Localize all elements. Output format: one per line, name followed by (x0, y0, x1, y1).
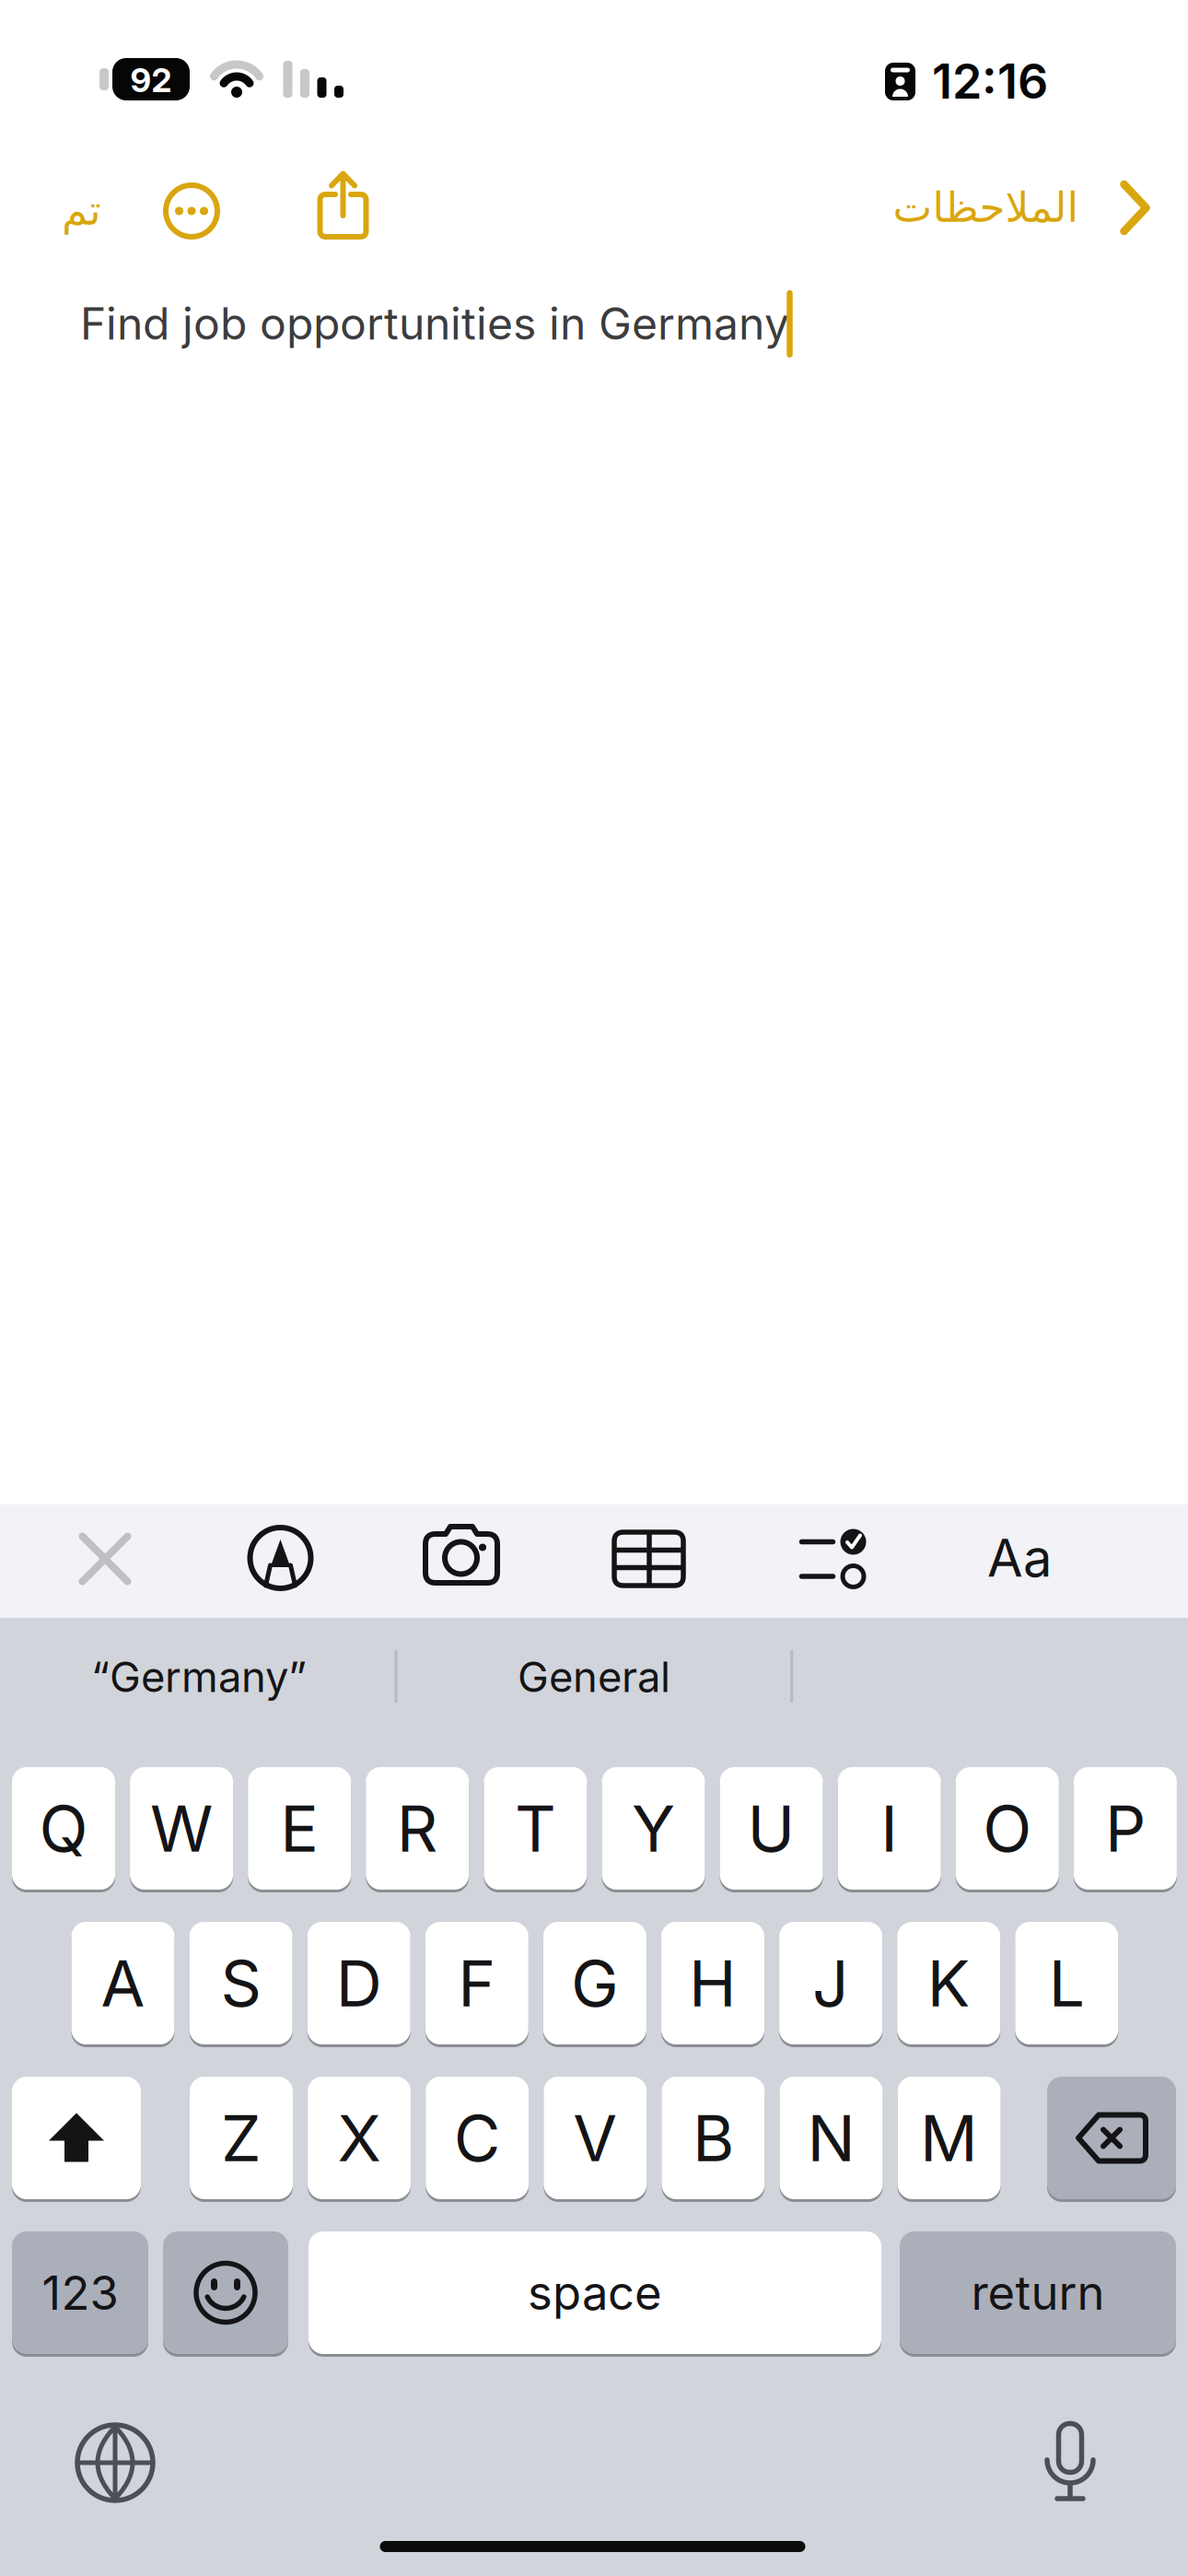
staticText: M (920, 2100, 978, 2176)
button[interactable]: E (0, 0, 1188, 2576)
staticText: E (280, 1791, 319, 1866)
staticText: الملاحظات (892, 184, 1078, 231)
button[interactable]: F (0, 0, 1188, 2576)
staticText: Z (221, 2100, 262, 2176)
staticText: W (150, 1791, 213, 1866)
button[interactable]: N (0, 0, 1188, 2576)
staticText: U (747, 1791, 795, 1866)
button[interactable]: K (0, 0, 1188, 2576)
button[interactable]: B (0, 0, 1188, 2576)
button[interactable]: J (0, 0, 1188, 2576)
button[interactable]: Format (969, 1516, 1070, 1599)
button[interactable]: G (0, 0, 1188, 2576)
button[interactable]: O (0, 0, 1188, 2576)
staticText: S (221, 1945, 261, 2021)
button[interactable]: Back (870, 166, 1165, 249)
staticText: V (573, 2100, 617, 2176)
staticText: Find job opportunities in Germany (80, 297, 789, 349)
staticText: space (528, 2265, 662, 2320)
button[interactable]: X (0, 0, 1188, 2576)
staticText: P (1105, 1791, 1146, 1866)
button[interactable]: General (401, 1626, 787, 1727)
staticText: F (458, 1945, 496, 2021)
button[interactable]: Checklist (791, 1523, 875, 1595)
button[interactable]: space (0, 0, 1188, 2576)
button[interactable]: M (0, 0, 1188, 2576)
button[interactable]: Delete (0, 0, 1188, 2576)
staticText: Y (632, 1791, 675, 1866)
staticText: “Germany” (91, 1652, 307, 1701)
staticText: B (692, 2100, 734, 2176)
button[interactable]: I (0, 0, 1188, 2576)
button[interactable]: T (0, 0, 1188, 2576)
staticText: R (397, 1791, 438, 1866)
staticText: Q (39, 1791, 88, 1866)
button[interactable]: تم (30, 169, 132, 252)
staticText: L (1049, 1945, 1085, 2021)
staticText: J (812, 1945, 849, 2021)
staticText: H (689, 1945, 737, 2021)
button[interactable]: H (0, 0, 1188, 2576)
staticText: G (571, 1945, 619, 2021)
staticText: 12:16 (932, 53, 1048, 109)
button[interactable]: V (0, 0, 1188, 2576)
staticText: تم (61, 186, 101, 234)
button[interactable]: Insert table (607, 1526, 690, 1592)
button[interactable]: A (0, 0, 1188, 2576)
staticText: C (454, 2100, 501, 2176)
button[interactable]: 123 (0, 0, 1188, 2576)
button[interactable]: “Germany” (6, 1626, 392, 1727)
button[interactable]: D (0, 0, 1188, 2576)
staticText: 92 (130, 61, 172, 100)
staticText: 123 (42, 2265, 118, 2320)
staticText: N (807, 2100, 855, 2176)
staticText: A (101, 1945, 145, 2021)
staticText: I (881, 1791, 898, 1866)
button[interactable]: R (0, 0, 1188, 2576)
button[interactable]: Markup (244, 1521, 317, 1595)
button[interactable]: return (0, 0, 1188, 2576)
button[interactable]: Z (0, 0, 1188, 2576)
staticText: X (338, 2100, 381, 2176)
button[interactable]: Next keyboard (71, 2418, 159, 2507)
button[interactable]: Share (308, 167, 378, 246)
button[interactable]: L (0, 0, 1188, 2576)
button[interactable]: S (0, 0, 1188, 2576)
button[interactable]: P (0, 0, 1188, 2576)
button[interactable]: Q (0, 0, 1188, 2576)
staticText: K (927, 1945, 970, 2021)
staticText: T (515, 1791, 556, 1866)
button[interactable]: C (0, 0, 1188, 2576)
button[interactable]: U (0, 0, 1188, 2576)
staticText: General (518, 1652, 670, 1701)
button[interactable]: Emoji (0, 0, 1188, 2576)
button[interactable]: More (158, 178, 225, 244)
button[interactable]: Insert photo (417, 1520, 506, 1597)
button[interactable]: Dismiss (78, 1532, 132, 1586)
button[interactable]: W (0, 0, 1188, 2576)
staticText: D (336, 1945, 382, 2021)
button[interactable]: Shift (0, 0, 1188, 2576)
staticText: Aa (987, 1528, 1052, 1588)
button[interactable]: Dictate (1033, 2418, 1107, 2506)
button[interactable]: Y (0, 0, 1188, 2576)
staticText: O (983, 1791, 1032, 1866)
staticText: return (971, 2265, 1105, 2320)
